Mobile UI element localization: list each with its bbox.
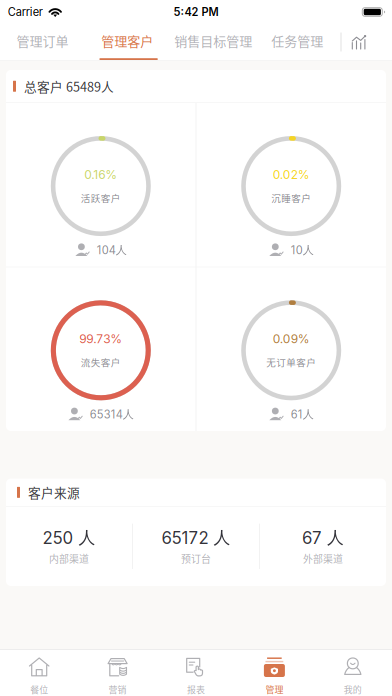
staticText: 活跃客户 — [81, 191, 121, 205]
staticText: 0.02% — [273, 167, 310, 182]
staticText: 无订单客户 — [266, 355, 316, 369]
staticText: 5:42 PM — [173, 5, 218, 19]
staticText: 外部渠道 — [303, 551, 343, 566]
staticText: 管理 — [265, 683, 283, 696]
staticText: 报表 — [187, 683, 205, 696]
staticText: 总客户 65489人 — [24, 77, 114, 95]
staticText: 我的 — [344, 683, 362, 696]
staticText: 客户来源 — [28, 483, 80, 501]
staticText: 10人 — [291, 243, 314, 257]
staticText: 餐位 — [30, 683, 48, 696]
button[interactable]: 管理订单 — [5, 24, 85, 60]
staticText: 内部渠道 — [49, 551, 89, 566]
staticText: 65314人 — [90, 407, 134, 421]
staticText: 营销 — [109, 683, 127, 696]
staticText: 管理客户 — [101, 31, 153, 50]
staticText: 104人 — [97, 243, 127, 257]
button[interactable]: 我的 — [314, 650, 392, 696]
staticText: 67 人 — [302, 527, 344, 548]
staticText: 沉睡客户 — [271, 191, 311, 205]
button[interactable]: 数据统计 — [341, 24, 392, 60]
staticText: 销售目标管理 — [174, 31, 252, 50]
staticText: 流失客户 — [81, 355, 121, 369]
staticText: 0.16% — [84, 167, 117, 182]
button[interactable]: 管理 — [235, 650, 314, 696]
button[interactable]: 销售目标管理 — [165, 24, 262, 60]
staticText: Carrier — [8, 5, 43, 19]
staticText: 任务管理 — [271, 31, 323, 50]
button[interactable]: 营销 — [78, 650, 157, 696]
staticText: 管理订单 — [17, 31, 69, 50]
button[interactable]: 任务管理 — [262, 24, 335, 60]
staticText: 预订台 — [181, 551, 211, 566]
staticText: 99.73% — [79, 332, 122, 346]
staticText: 61人 — [291, 407, 314, 421]
button[interactable]: 报表 — [157, 650, 235, 696]
staticText: 65172 人 — [161, 527, 230, 548]
button[interactable]: 餐位 — [0, 650, 78, 696]
staticText: 0.09% — [273, 332, 310, 346]
staticText: 250 人 — [43, 527, 96, 548]
button[interactable]: 管理客户 — [85, 24, 165, 60]
